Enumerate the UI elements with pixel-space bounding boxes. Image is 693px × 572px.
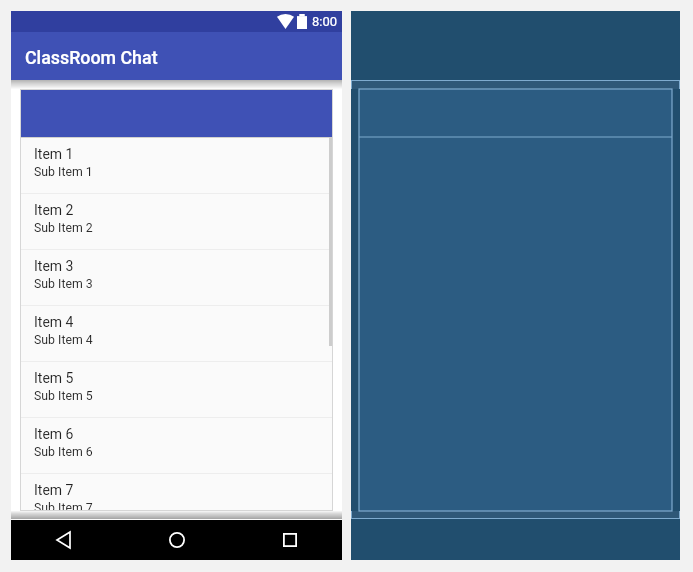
button[interactable]: Item 1 bbox=[21, 138, 332, 194]
staticText: Item 2 bbox=[34, 202, 74, 218]
staticText: ClassRoom Chat bbox=[25, 47, 158, 68]
staticText: Item 3 bbox=[34, 258, 74, 274]
staticText: Sub Item 4 bbox=[34, 333, 93, 347]
button[interactable]: Recent apps bbox=[244, 520, 336, 560]
staticText: Sub Item 6 bbox=[34, 445, 93, 459]
button[interactable]: Item 6 bbox=[21, 418, 332, 474]
button[interactable]: Item 5 bbox=[21, 362, 332, 418]
staticText: Sub Item 2 bbox=[34, 221, 93, 235]
button[interactable]: Item 3 bbox=[21, 250, 332, 306]
button[interactable]: Back bbox=[17, 520, 109, 560]
button[interactable]: Home bbox=[131, 520, 223, 560]
button[interactable]: Item 2 bbox=[21, 194, 332, 250]
button[interactable]: Item 4 bbox=[21, 306, 332, 362]
staticText: Item 1 bbox=[34, 146, 74, 162]
staticText: Sub Item 1 bbox=[34, 165, 93, 179]
button[interactable]: ClassRoom Chat bbox=[11, 32, 342, 80]
button[interactable]: Item 7 bbox=[21, 474, 332, 510]
staticText: Sub Item 7 bbox=[34, 501, 93, 510]
staticText: Sub Item 3 bbox=[34, 277, 93, 291]
staticText: 8:00 bbox=[312, 14, 338, 29]
staticText: Item 5 bbox=[34, 370, 74, 386]
staticText: Item 6 bbox=[34, 426, 74, 442]
staticText: Sub Item 5 bbox=[34, 389, 93, 403]
staticText: Item 4 bbox=[34, 314, 74, 330]
staticText: Item 7 bbox=[34, 482, 74, 498]
